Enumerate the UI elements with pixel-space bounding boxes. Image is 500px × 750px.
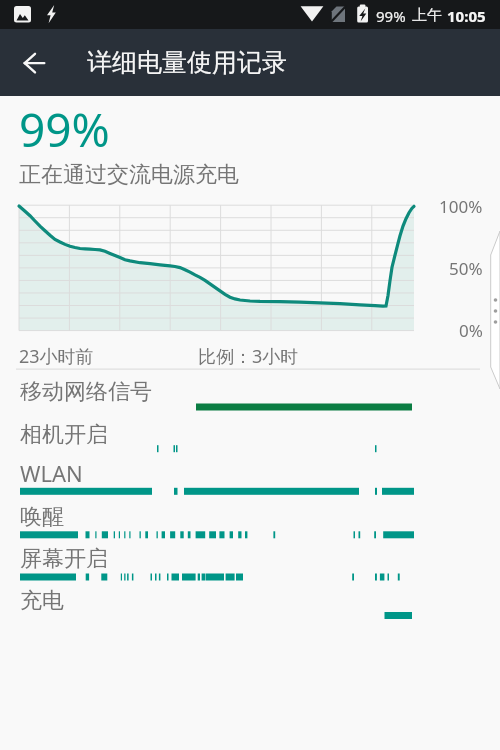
button[interactable]: 移动网络信号 [20,378,152,406]
staticText: 详细电量使用记录 [87,47,287,78]
button[interactable]: 唤醒 [20,503,64,531]
button[interactable]: 屏幕开启 [20,545,108,573]
staticText: 99% [376,6,406,26]
button[interactable]: 充电 [20,587,64,615]
staticText: 23小时前 [19,344,94,369]
staticText: 100% [439,195,483,218]
button[interactable]: WLAN [20,458,83,488]
staticText: 比例：3小时 [198,344,299,369]
staticText: 50% [449,257,483,280]
button[interactable]: 相机开启 [20,421,108,449]
staticText: 上午 [412,6,442,25]
staticText: 99% [19,98,110,161]
staticText: 正在通过交流电源充电 [19,161,239,189]
button[interactable]: Back [12,39,60,87]
staticText: 0% [459,319,483,342]
staticText: 10:05 [447,6,486,26]
